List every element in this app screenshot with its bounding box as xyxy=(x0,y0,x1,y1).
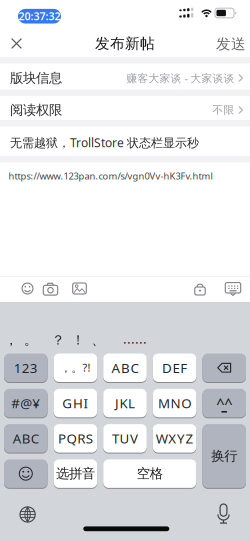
staticText: GHI xyxy=(62,394,88,412)
staticText: 无需越狱，TrollStore 状态栏显示秒 xyxy=(10,134,199,150)
staticText: ！ xyxy=(71,332,84,348)
button[interactable]: Privacy xyxy=(191,279,209,299)
button[interactable]: 换行 xyxy=(202,424,246,488)
staticText: 赚客大家谈 - 大家谈谈 xyxy=(126,71,234,85)
button[interactable]: DEF xyxy=(153,353,196,382)
button[interactable]: WXYZ xyxy=(153,424,196,453)
button[interactable]: Emoji xyxy=(17,278,37,298)
staticText: JKL xyxy=(115,394,135,412)
button[interactable]: ^_^ xyxy=(202,388,246,418)
button[interactable]: 版块信息 xyxy=(0,65,250,91)
staticText: ...... xyxy=(123,330,147,347)
button[interactable]: Camera xyxy=(39,278,62,299)
button[interactable]: 阅读权限 xyxy=(0,97,250,123)
staticText: 不限 xyxy=(212,103,234,116)
staticText: 选拼音 xyxy=(56,465,95,482)
button[interactable]: 、 xyxy=(90,331,106,349)
staticText: ，。?! xyxy=(60,361,90,375)
staticText: MNO xyxy=(158,394,191,412)
staticText: ^^ xyxy=(216,393,232,413)
staticText: 。 xyxy=(24,332,37,348)
button[interactable]: 。 xyxy=(22,331,38,349)
button[interactable]: TUV xyxy=(103,424,147,453)
button[interactable]: ？ xyxy=(50,331,66,349)
button[interactable]: Photos xyxy=(69,279,90,298)
staticText: ABC xyxy=(13,429,39,447)
button[interactable]: #@¥ xyxy=(4,388,48,418)
button[interactable]: Dictation xyxy=(212,500,235,529)
button[interactable]: ABC xyxy=(103,353,147,382)
button[interactable]: Hide keyboard xyxy=(221,278,245,300)
staticText: 20:37:32 xyxy=(18,9,60,23)
button[interactable]: ABC xyxy=(4,424,48,453)
button[interactable]: Next keyboard xyxy=(15,502,40,527)
button[interactable]: 发送 xyxy=(212,27,250,61)
staticText: 换行 xyxy=(211,448,237,464)
button[interactable]: Close xyxy=(3,30,30,57)
staticText: PQRS xyxy=(58,429,93,447)
staticText: ？ xyxy=(51,332,64,348)
button[interactable]: ，。?! xyxy=(54,353,97,382)
button[interactable]: 123 xyxy=(4,353,48,382)
staticText: #@¥ xyxy=(11,394,40,412)
button[interactable]: PQRS xyxy=(54,424,97,453)
button[interactable]: 选拼音 xyxy=(54,459,97,488)
staticText: 空格 xyxy=(137,465,163,482)
staticText: DEF xyxy=(162,359,187,377)
staticText: 、 xyxy=(91,332,104,348)
button[interactable]: ！ xyxy=(70,331,86,349)
button[interactable]: Delete xyxy=(202,353,246,382)
staticText: 发送 xyxy=(216,35,246,53)
staticText: 阅读权限 xyxy=(10,102,62,118)
button[interactable]: ...... xyxy=(120,329,150,347)
staticText: 版块信息 xyxy=(10,70,62,86)
button[interactable]: Emoji xyxy=(4,459,48,488)
staticText: 发布新帖 xyxy=(95,34,155,52)
button[interactable]: JKL xyxy=(103,388,147,418)
button[interactable]: GHI xyxy=(54,388,97,418)
button[interactable]: MNO xyxy=(153,388,196,418)
staticText: ， xyxy=(4,332,17,348)
staticText: ABC xyxy=(111,359,139,377)
staticText: 123 xyxy=(14,359,38,377)
staticText: TUV xyxy=(112,429,138,447)
staticText: WXYZ xyxy=(156,429,193,447)
button[interactable]: 空格 xyxy=(103,459,196,488)
staticText: https://www.123pan.com/s/vgn0Vv-hK3Fv.ht… xyxy=(8,170,212,182)
button[interactable]: ， xyxy=(3,331,19,349)
